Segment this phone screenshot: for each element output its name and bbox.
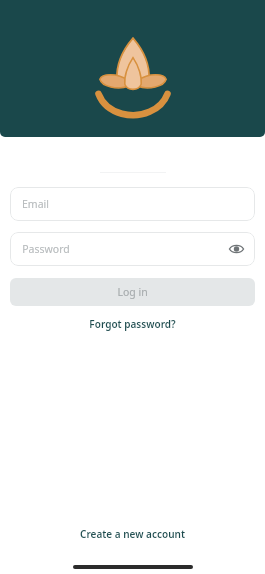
button[interactable]: Email	[10, 187, 255, 221]
button[interactable]: Password	[10, 232, 255, 266]
button[interactable]: Create a new account	[72, 524, 193, 544]
staticText: Email	[22, 197, 49, 211]
button[interactable]: Forgot password?	[81, 314, 184, 334]
staticText: Log in	[117, 285, 148, 299]
staticText: Forgot password?	[89, 317, 176, 331]
staticText: Password	[22, 242, 70, 256]
button[interactable]: Log in	[10, 278, 255, 306]
staticText: Create a new account	[80, 527, 185, 541]
button[interactable]: Show password	[225, 238, 247, 260]
